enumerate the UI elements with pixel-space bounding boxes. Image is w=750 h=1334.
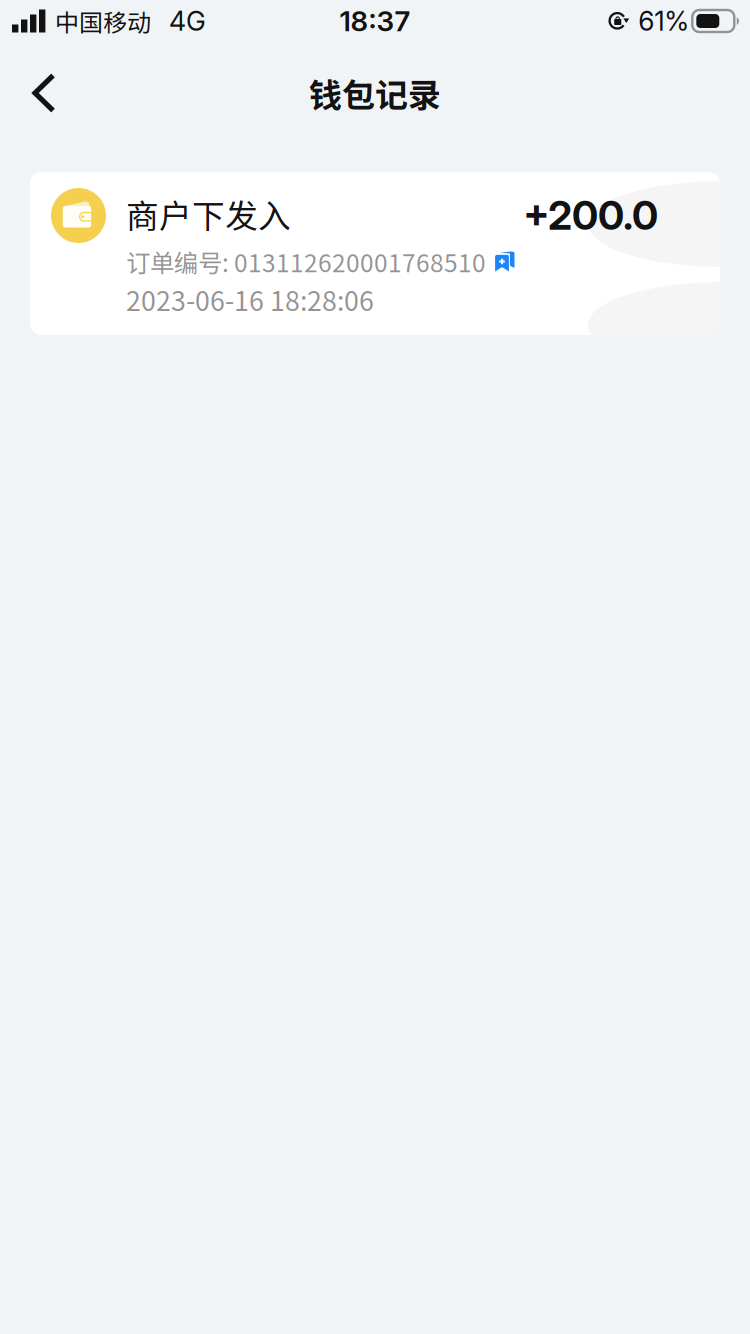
- staticText: 4G: [169, 5, 206, 37]
- button[interactable]: Back: [13, 64, 75, 122]
- staticText: 订单编号: 013112620001768510: [126, 244, 486, 279]
- staticText: 商户下发入: [126, 190, 291, 237]
- staticText: 61%: [638, 5, 689, 37]
- button[interactable]: 商户下发入: [30, 172, 720, 335]
- staticText: 18:37: [339, 4, 410, 38]
- staticText: +200.0: [523, 191, 658, 239]
- staticText: 中国移动: [55, 4, 151, 38]
- staticText: 2023-06-16 18:28:06: [126, 280, 374, 319]
- staticText: 钱包记录: [309, 69, 441, 117]
- button[interactable]: Copy order number: [485, 242, 525, 282]
